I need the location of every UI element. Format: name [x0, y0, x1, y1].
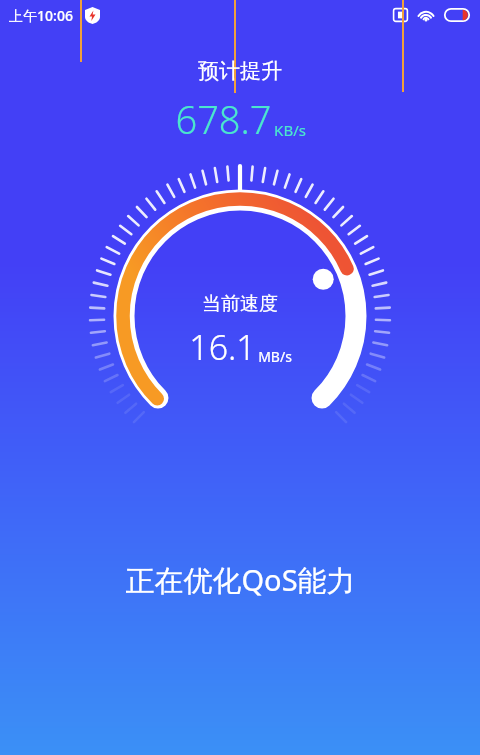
button[interactable]: 正在优化QoS能力 [0, 560, 480, 600]
staticText: 上午10:06 [9, 6, 73, 25]
staticText: 当前速度 [202, 292, 278, 316]
other: Charging protection [85, 7, 100, 24]
staticText: 678.7 [175, 93, 272, 145]
other: Mobile signal [393, 8, 408, 22]
staticText: 16.1 [189, 324, 256, 370]
other: Battery 16 percent [444, 8, 470, 22]
staticText: MB/s [258, 347, 292, 366]
other: Wi-Fi [417, 8, 435, 22]
staticText: KB/s [274, 120, 306, 140]
staticText: 预计提升 [198, 58, 282, 84]
staticText: 正在优化QoS能力 [125, 560, 356, 600]
